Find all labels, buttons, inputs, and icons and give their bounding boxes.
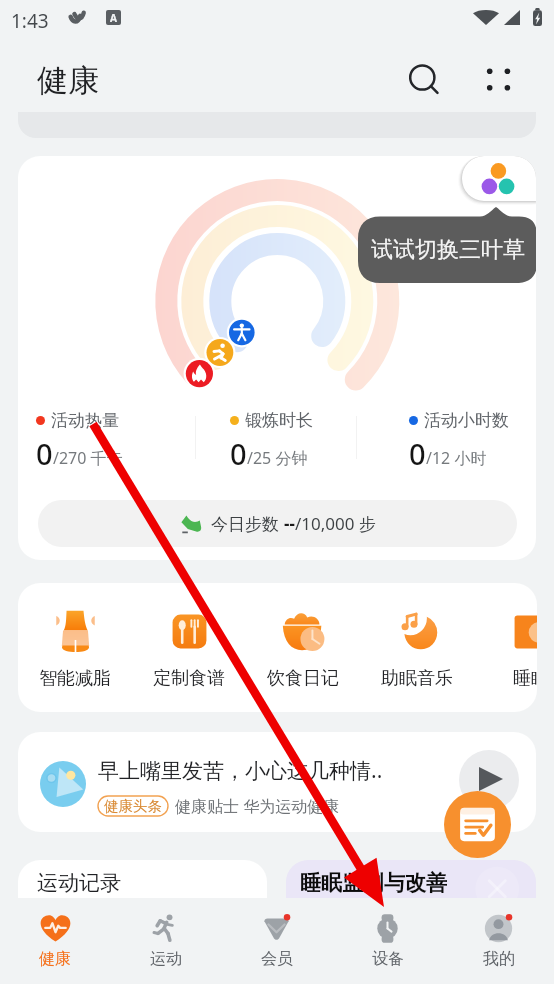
button[interactable]: 活动小时数 [409,410,509,472]
staticText: 健康 [39,949,71,969]
button[interactable]: 运动 [110,898,221,984]
staticText: 我的 [483,949,515,969]
staticText: /270 千卡 [53,447,123,469]
button[interactable]: 设备 [332,898,443,984]
button[interactable]: 会员 [221,898,332,984]
button[interactable]: 智能减脂 [25,608,125,690]
button[interactable]: 我的 [443,898,554,984]
staticText: 1:43 [11,8,49,34]
button[interactable]: Search [398,53,447,102]
button[interactable]: Switch to clover style [18,156,536,560]
staticText: 健康头条 [104,797,162,815]
button[interactable]: 助眠音乐 [367,608,467,690]
button[interactable]: 睡眠监测与改善 [286,860,536,900]
staticText: 0 [409,434,426,472]
button[interactable]: 运动记录 [18,860,267,900]
button[interactable]: 试试切换三叶草 [358,216,536,283]
staticText: 饮食日记 [267,667,339,690]
staticText: 会员 [261,949,293,969]
staticText: 早上嘴里发苦，小心这几种情.. [98,756,383,785]
button[interactable]: 早上嘴里发苦，小心这几种情.. [18,732,536,832]
staticText: -- [284,512,295,535]
staticText: /25 分钟 [247,447,308,469]
staticText: 睡眠 [513,667,537,690]
staticText: /12 小时 [426,447,487,469]
button[interactable]: 定制食谱 [139,608,239,690]
staticText: 睡眠监测与改善 [300,870,447,896]
staticText: 运动记录 [37,870,121,896]
staticText: 定制食谱 [153,667,225,690]
button[interactable]: 今日步数 [38,500,517,547]
staticText: 0 [230,434,247,472]
staticText: 试试切换三叶草 [371,236,525,264]
button[interactable]: Record activity [444,791,511,858]
button[interactable]: More options [476,55,522,101]
staticText: 锻炼时长 [245,410,313,431]
staticText: 0 [36,434,53,472]
staticText: 健康贴士 华为运动健康 [175,795,340,817]
button[interactable]: 活动热量 [36,410,123,472]
staticText: 健康 [37,61,99,100]
staticText: 活动小时数 [424,410,509,431]
button[interactable]: 锻炼时长 [230,410,313,472]
staticText: 运动 [150,949,182,969]
staticText: /10,000 步 [295,512,376,535]
button[interactable]: 健康 [0,898,110,984]
button[interactable]: 睡眠 [481,608,537,690]
staticText: 设备 [372,949,404,969]
staticText: 助眠音乐 [381,667,453,690]
button[interactable]: 饮食日记 [253,608,353,690]
staticText: A [110,11,117,25]
staticText: 活动热量 [51,410,119,431]
button[interactable]: Switch to clover style [462,156,536,201]
staticText: 今日步数 [211,512,284,535]
staticText: 智能减脂 [39,667,111,690]
